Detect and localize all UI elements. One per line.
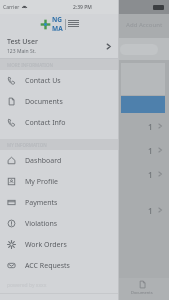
staticText: 1 bbox=[148, 205, 153, 216]
staticText: 1 bbox=[148, 169, 153, 180]
staticText: 1 bbox=[148, 121, 153, 132]
staticText: 1 bbox=[148, 145, 153, 156]
staticText: ACC Requests bbox=[25, 261, 70, 271]
button[interactable]: Work Orders bbox=[0, 234, 119, 255]
staticText: Payments bbox=[25, 198, 58, 208]
staticText: MA bbox=[52, 24, 63, 33]
button[interactable]: Dashboard bbox=[0, 150, 119, 171]
button[interactable]: Test User bbox=[0, 34, 119, 58]
staticText: Documents bbox=[25, 97, 63, 107]
staticText: 123 Main St. bbox=[7, 48, 36, 55]
staticText: powered by xxxx bbox=[7, 282, 47, 289]
staticText: Contact Us bbox=[25, 76, 61, 86]
staticText: MORE INFORMATION bbox=[7, 62, 53, 68]
button[interactable]: Payments bbox=[0, 192, 119, 213]
staticText: Dashboard bbox=[25, 156, 62, 166]
button[interactable]: Violations bbox=[0, 213, 119, 234]
staticText: Violations bbox=[25, 219, 58, 229]
staticText: MY INFORMATION bbox=[7, 142, 47, 148]
staticText: Test User bbox=[7, 37, 38, 47]
staticText: Contact Info bbox=[25, 118, 66, 128]
other: Open profile bbox=[105, 43, 112, 50]
staticText: Documents bbox=[131, 290, 153, 295]
button[interactable]: Documents bbox=[0, 91, 119, 112]
button[interactable]: My Profile bbox=[0, 171, 119, 192]
button[interactable]: Contact Info bbox=[0, 112, 119, 133]
staticText: Work Orders bbox=[25, 240, 67, 250]
button[interactable]: Contact Us bbox=[0, 70, 119, 91]
staticText: NG bbox=[52, 15, 62, 24]
button[interactable]: ACC Requests bbox=[0, 255, 119, 276]
staticText: Add Account bbox=[126, 21, 163, 29]
staticText: Carrier bbox=[3, 4, 20, 11]
staticText: My Profile bbox=[25, 177, 58, 187]
staticText: 2:39 PM bbox=[73, 4, 92, 11]
